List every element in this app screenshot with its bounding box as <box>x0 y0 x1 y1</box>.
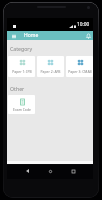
staticText: Paper 2: AFB <box>40 69 61 74</box>
button[interactable]: Recent apps <box>68 166 78 176</box>
staticText: Category <box>10 45 33 52</box>
staticText: Paper 1: IPB <box>12 69 32 74</box>
button[interactable]: Paper 3: CMAB <box>66 56 93 77</box>
button[interactable]: Paper 2: AFB <box>37 56 64 77</box>
button[interactable]: Paper 1: IPB <box>8 56 35 77</box>
button[interactable]: Home <box>45 166 55 176</box>
staticText: Exam Code <box>13 107 31 112</box>
staticText: Home <box>24 32 39 39</box>
staticText: Paper 3: CMAB <box>68 69 92 74</box>
button[interactable]: Back <box>22 166 32 176</box>
button[interactable]: Open navigation menu <box>10 32 17 40</box>
staticText: Other <box>10 85 25 92</box>
staticText: 10:00 <box>77 21 90 28</box>
button[interactable]: Exam Code <box>8 95 35 114</box>
button[interactable]: Notifications <box>84 31 92 40</box>
